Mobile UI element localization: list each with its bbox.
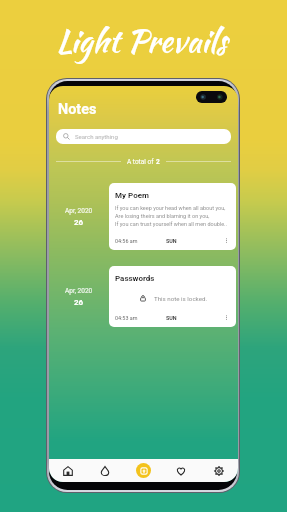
staticText: Apr, 2020 [65,287,93,295]
staticText: 26 [74,298,84,307]
staticText: Search anything [75,133,118,140]
button[interactable]: Notes [86,459,124,482]
staticText: 04:56 am [115,238,138,244]
button[interactable]: Home [49,459,86,482]
staticText: Light Prevails [56,18,227,64]
staticText: Apr, 2020 [65,207,93,215]
button[interactable]: More options [222,236,231,245]
staticText: SUN [166,315,177,321]
button[interactable]: Passwords [109,266,236,327]
button[interactable]: Add note [124,459,162,482]
button[interactable]: Settings [200,459,238,482]
staticText: Passwords [115,274,155,283]
staticText: This note is locked. [154,295,208,302]
staticText: 04:53 am [115,315,138,321]
staticText: Notes [58,101,97,118]
staticText: If you can keep your head when all about… [115,205,227,227]
staticText: 26 [74,218,84,227]
staticText: SUN [166,238,177,244]
button[interactable]: My Poem [109,183,236,250]
button[interactable]: More options [222,313,231,322]
button[interactable]: Search anything [56,129,231,144]
staticText: A total of [127,158,156,166]
staticText: 2 [156,158,160,166]
button[interactable]: Favourites [162,459,200,482]
staticText: My Poem [115,191,149,200]
